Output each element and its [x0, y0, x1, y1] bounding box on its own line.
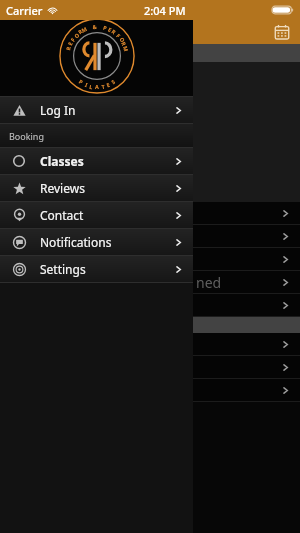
button[interactable]: Settings — [0, 256, 193, 282]
button[interactable]: Notifications — [0, 229, 193, 255]
staticText: A — [102, 229, 109, 241]
staticText: A — [95, 83, 99, 90]
button[interactable] — [0, 294, 300, 316]
staticText: Settings — [40, 261, 86, 277]
staticText: F — [115, 32, 122, 39]
staticText: M — [146, 166, 160, 178]
staticText: Classes — [40, 153, 84, 169]
button[interactable] — [0, 202, 300, 224]
staticText: Contact — [40, 207, 84, 223]
staticText: Carrier — [6, 3, 43, 18]
staticText: O — [118, 35, 127, 43]
staticText: R — [70, 137, 82, 151]
staticText: T — [110, 227, 118, 240]
staticText: E — [105, 80, 111, 88]
button[interactable] — [0, 356, 300, 378]
staticText: F — [69, 36, 76, 43]
staticText: M — [80, 25, 88, 34]
staticText: Reviews — [40, 180, 85, 196]
staticText: I — [84, 81, 89, 88]
staticText: I — [83, 226, 91, 238]
staticText: 2:04 PM — [144, 3, 186, 18]
staticText: E — [118, 225, 128, 239]
staticText: L — [92, 227, 100, 240]
staticText: R — [76, 27, 84, 35]
button[interactable] — [0, 379, 300, 401]
staticText: Log In — [40, 102, 76, 118]
staticText: P — [72, 220, 84, 234]
button[interactable]: ned — [0, 271, 300, 293]
staticText: L — [88, 83, 94, 90]
staticText: E — [107, 25, 113, 33]
staticText: R — [120, 40, 128, 47]
staticText: & — [92, 23, 97, 30]
staticText: Notifications — [40, 234, 112, 250]
button[interactable] — [0, 333, 300, 355]
staticText: F — [134, 144, 146, 156]
staticText: S — [109, 77, 116, 86]
staticText: R — [128, 137, 140, 151]
staticText: R — [50, 167, 63, 176]
staticText: Booking — [9, 130, 44, 142]
staticText: O — [72, 31, 81, 40]
button[interactable]: Classes — [0, 148, 193, 174]
button[interactable]: Contact — [0, 202, 193, 228]
staticText: R — [64, 46, 72, 51]
button[interactable]: Log In — [0, 97, 193, 123]
staticText: P — [77, 77, 84, 86]
button[interactable] — [0, 225, 300, 247]
staticText: M — [122, 45, 130, 52]
staticText: E — [53, 159, 67, 169]
button[interactable]: Reviews — [0, 175, 193, 201]
staticText: T — [100, 83, 106, 90]
staticText: ned — [196, 273, 222, 292]
button[interactable] — [0, 248, 300, 270]
staticText: F — [58, 150, 71, 161]
staticText: E — [66, 40, 74, 47]
staticText: P — [102, 24, 108, 31]
staticText: S — [126, 220, 138, 234]
staticText: R — [110, 27, 118, 35]
button[interactable]: Calendar — [272, 22, 292, 42]
staticText: O — [63, 143, 77, 157]
